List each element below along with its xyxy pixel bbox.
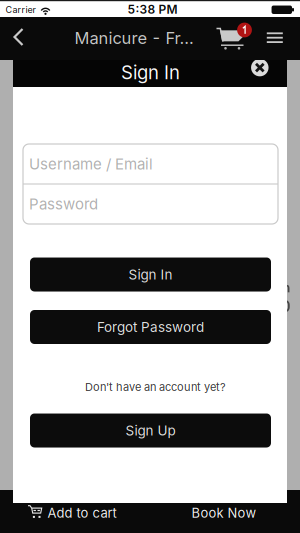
staticText: Username / Email bbox=[29, 155, 153, 173]
staticText: Don't have an account yet? bbox=[85, 380, 226, 394]
staticText: Sign Up bbox=[125, 422, 175, 439]
button[interactable]: Add to cart bbox=[24, 499, 120, 527]
staticText: Book Now bbox=[191, 505, 256, 521]
button[interactable]: Back bbox=[11, 27, 27, 47]
button[interactable]: Username / Email bbox=[23, 144, 278, 184]
staticText: Forgot Password bbox=[97, 319, 204, 335]
staticText: Sign In bbox=[128, 266, 172, 283]
staticText: Password bbox=[29, 195, 98, 213]
staticText: Sign In bbox=[121, 61, 180, 84]
staticText: Manicure - Fr… bbox=[74, 28, 193, 48]
staticText: Add to cart bbox=[47, 505, 116, 521]
button[interactable]: Password bbox=[23, 184, 278, 224]
button[interactable]: Cart bbox=[213, 19, 253, 55]
button[interactable]: Menu bbox=[264, 27, 286, 49]
staticText: Carrier bbox=[5, 4, 35, 15]
button[interactable]: Sign In bbox=[30, 257, 271, 291]
button[interactable]: Book Now bbox=[179, 499, 269, 527]
button[interactable]: Sign Up bbox=[30, 413, 271, 447]
button[interactable]: Forgot Password bbox=[30, 310, 271, 344]
staticText: 5:38 PM bbox=[127, 2, 177, 17]
button[interactable]: Close bbox=[248, 56, 272, 80]
